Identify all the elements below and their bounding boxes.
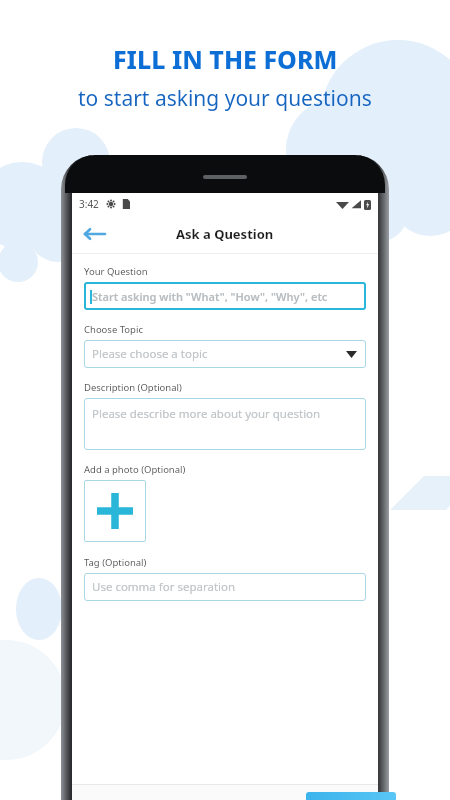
- staticText: Start asking with "What", "How", "Why", …: [92, 289, 328, 304]
- staticText: Tag (Optional): [84, 556, 147, 569]
- button[interactable]: Start asking with "What", "How", "Why", …: [84, 282, 366, 310]
- staticText: FILL IN THE FORM: [113, 42, 338, 76]
- staticText: Please choose a topic: [92, 346, 208, 362]
- staticText: Use comma for separation: [92, 579, 236, 595]
- staticText: 3:42: [79, 197, 99, 211]
- staticText: Please describe more about your question: [92, 406, 321, 422]
- button[interactable]: Please describe more about your question: [84, 398, 366, 450]
- button[interactable]: Add a photo: [84, 480, 146, 542]
- staticText: Ask a Question: [176, 225, 274, 243]
- staticText: Description (Optional): [84, 381, 182, 394]
- button[interactable]: Back: [72, 215, 116, 253]
- button[interactable]: Submit: [306, 792, 396, 800]
- staticText: Add a photo (Optional): [84, 463, 186, 476]
- button[interactable]: Use comma for separation: [84, 573, 366, 601]
- button[interactable]: Please choose a topic: [84, 340, 366, 368]
- staticText: to start asking your questions: [78, 84, 372, 113]
- staticText: Your Question: [84, 265, 148, 278]
- staticText: Choose Topic: [84, 323, 143, 336]
